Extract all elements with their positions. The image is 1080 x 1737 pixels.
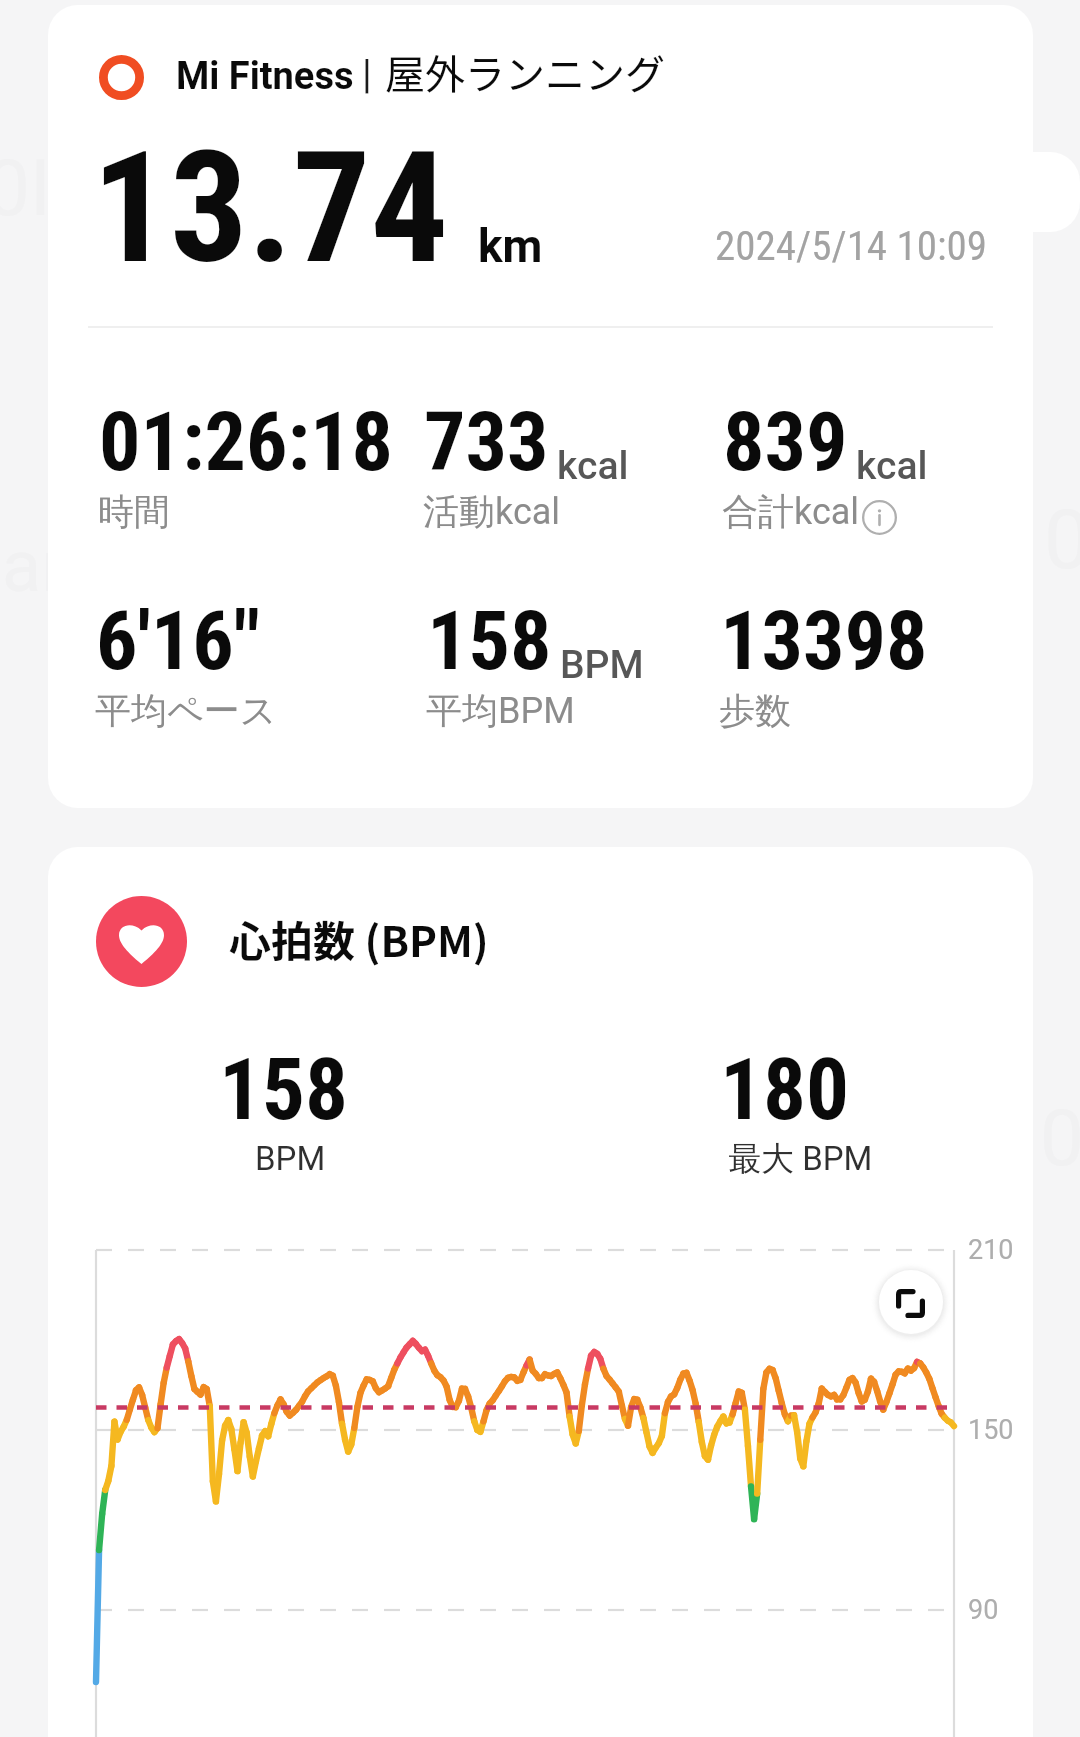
staticText: ara xyxy=(2,524,104,608)
staticText: BPM xyxy=(560,642,644,688)
staticText: 839 xyxy=(723,394,848,490)
staticText: 最大 BPM xyxy=(728,1138,873,1180)
staticText: kcal xyxy=(557,443,629,489)
staticText: 90 xyxy=(968,1594,999,1626)
staticText: 2024/5/14 10:09 xyxy=(715,222,988,270)
staticText: 時間 xyxy=(98,489,170,534)
staticText: 平均BPM xyxy=(426,688,575,733)
staticText: 13398 xyxy=(720,593,928,689)
staticText: 平均ペース xyxy=(95,688,277,733)
button[interactable]: Total calories info xyxy=(862,500,897,535)
staticText: 0ID( xyxy=(0,143,129,234)
staticText: 01:26:18 xyxy=(99,394,393,490)
staticText: 733 xyxy=(424,394,549,490)
staticText: 6'16" xyxy=(96,593,260,689)
staticText: 150 xyxy=(968,1414,1014,1446)
staticText: | xyxy=(362,51,372,98)
staticText: kcal xyxy=(856,443,928,489)
staticText: 合計kcal xyxy=(722,489,860,534)
button[interactable]: Outdoor running summary xyxy=(48,5,1033,808)
staticText: 158 xyxy=(219,1040,348,1140)
button[interactable]: Heart rate details xyxy=(48,847,1033,1737)
staticText: BPM xyxy=(255,1139,326,1178)
staticText: 13.74 xyxy=(92,118,449,298)
staticText: 210 xyxy=(968,1234,1014,1266)
staticText: Mi Fitness xyxy=(176,54,354,99)
staticText: 180 xyxy=(720,1040,849,1140)
button[interactable]: Expand heart rate chart xyxy=(879,1270,943,1334)
staticText: 158 xyxy=(427,593,552,689)
staticText: 活動kcal xyxy=(423,489,561,534)
staticText: km xyxy=(478,219,543,273)
staticText: 心拍数 (BPM) xyxy=(229,908,489,969)
staticText: 屋外ランニング xyxy=(385,43,665,101)
staticText: 歩数 xyxy=(719,688,791,733)
